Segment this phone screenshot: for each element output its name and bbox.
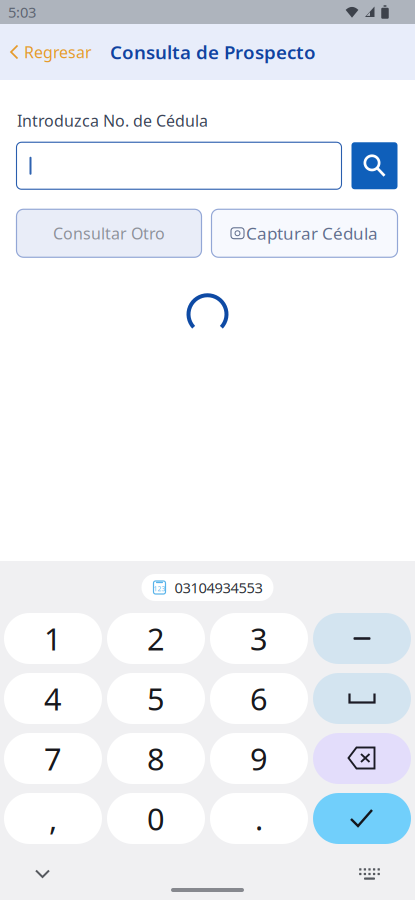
staticText: 7 [44,738,62,779]
button[interactable]: 6 [210,673,308,724]
staticText: 2 [147,618,165,659]
button[interactable]: 0 [107,793,205,844]
button[interactable]: 8 [107,733,205,784]
button[interactable]: Ocultar teclado [25,859,60,888]
button[interactable]: 2 [107,613,205,664]
button[interactable]: 3 [210,613,308,664]
staticText: 03104934553 [174,578,262,597]
staticText: 0 [147,798,165,839]
staticText: 6 [250,678,268,719]
staticText: 5 [147,678,165,719]
button[interactable]: Aceptar [313,793,411,844]
staticText: . [255,798,263,839]
button[interactable]: Capturar Cédula [211,209,397,257]
button[interactable]: Cambiar teclado [349,857,390,890]
staticText: 9 [250,738,268,779]
button[interactable]: Espacio [313,673,411,724]
staticText: 5:03 [8,2,36,22]
staticText: Consulta de Prospecto [110,40,316,64]
staticText: , [49,798,57,839]
button[interactable]: Guion [313,613,411,664]
button[interactable]: Buscar [351,142,397,189]
button[interactable]: 4 [4,673,102,724]
staticText: Capturar Cédula [246,222,378,245]
button[interactable]: Borrar [313,733,411,784]
button[interactable]: Consultar Otro [16,209,201,257]
button[interactable]: Regresar [2,32,101,72]
button[interactable]: 123 [141,574,273,601]
button[interactable]: . [210,793,308,844]
button[interactable]: 5 [107,673,205,724]
staticText: 1 [44,618,62,659]
button[interactable]: 1 [4,613,102,664]
staticText: 3 [250,618,268,659]
staticText: 8 [147,738,165,779]
button[interactable]: 9 [210,733,308,784]
staticText: Consultar Otro [53,223,165,244]
staticText: Regresar [24,41,92,63]
staticText: Introduzca No. de Cédula [17,110,208,131]
button[interactable]: 7 [4,733,102,784]
staticText: 4 [44,678,62,719]
staticText: 123 [153,584,165,593]
button[interactable]: , [4,793,102,844]
